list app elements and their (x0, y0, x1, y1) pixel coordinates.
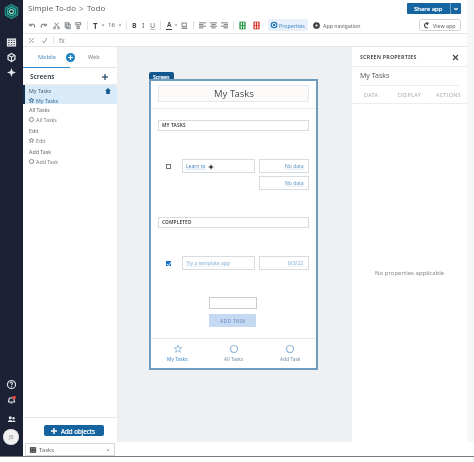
button[interactable]: All Tasks (23, 104, 117, 125)
button[interactable]: Cut (51, 19, 62, 32)
staticText: Add Task (280, 356, 301, 363)
staticText: DISPLAY (398, 91, 422, 98)
staticText: Simple To-do (28, 3, 76, 14)
button[interactable]: Screen (149, 72, 174, 81)
button[interactable]: Automation (4, 65, 19, 80)
button[interactable]: Align right (219, 19, 230, 32)
button[interactable]: Add objects (44, 425, 104, 436)
button[interactable]: Web (70, 47, 117, 67)
staticText: Properties (279, 22, 305, 29)
staticText: ACTIONS (436, 91, 461, 98)
button[interactable]: Mobile (23, 47, 70, 67)
staticText: No data (285, 180, 304, 187)
button[interactable]: Apps (4, 50, 19, 65)
button[interactable]: No data (259, 176, 309, 190)
button[interactable]: Task completed (166, 261, 171, 266)
button[interactable]: Confirm (40, 36, 49, 45)
button[interactable]: My Tasks (158, 85, 309, 102)
button[interactable]: AppSheet home (2, 2, 20, 20)
button[interactable]: Add Task (23, 146, 117, 167)
button[interactable]: Share app (407, 3, 450, 14)
staticText: My Tasks (360, 71, 390, 81)
button[interactable]: Font (91, 17, 100, 33)
button[interactable]: Learn to (182, 159, 255, 173)
staticText: Add Task (36, 158, 59, 165)
staticText: ADD TASK (220, 317, 246, 324)
button[interactable]: Format painter (73, 19, 84, 32)
button[interactable]: Expand (173, 20, 179, 30)
staticText: Share app (414, 5, 443, 13)
button[interactable]: Align left (197, 19, 208, 32)
button[interactable]: Try a template app (182, 256, 255, 270)
staticText: Edit (29, 127, 39, 134)
button[interactable]: No data (259, 159, 309, 173)
button[interactable]: Help (4, 377, 19, 392)
button[interactable]: Merge cells (251, 19, 262, 32)
staticText: Todo (87, 3, 106, 14)
staticText: Tasks (39, 446, 55, 454)
button[interactable]: 6/3/22 (259, 256, 309, 270)
staticText: U (150, 21, 156, 31)
button[interactable]: My Tasks (149, 339, 206, 369)
staticText: > (79, 3, 84, 14)
button[interactable]: B (130, 19, 139, 32)
button[interactable]: U (148, 19, 157, 32)
staticText: A (167, 20, 172, 29)
button[interactable]: Cancel (27, 36, 36, 45)
button[interactable]: Text color (164, 17, 173, 33)
button[interactable]: Edit (23, 125, 117, 146)
staticText: I (142, 21, 145, 31)
button[interactable]: DISPLAY (391, 86, 429, 103)
button[interactable]: ACTIONS (429, 86, 467, 103)
staticText: Edit (36, 137, 46, 144)
button[interactable]: ADD TASK (209, 314, 256, 327)
button[interactable]: Undo (27, 19, 38, 32)
staticText: 16 (108, 21, 115, 29)
button[interactable]: Switch platform (66, 53, 75, 62)
staticText: All Tasks (36, 116, 57, 123)
staticText: Learn to (186, 163, 206, 170)
button[interactable] (209, 297, 257, 309)
button[interactable]: My Tasks (23, 85, 117, 104)
button[interactable]: Font size (106, 17, 117, 33)
button[interactable]: Copy (62, 19, 73, 32)
button[interactable]: Account (3, 429, 19, 445)
button[interactable]: Expand (117, 20, 123, 30)
staticText: Screens (30, 72, 55, 81)
staticText: JB (9, 434, 14, 441)
staticText: SCREEN PROPERTIES (360, 53, 417, 60)
button[interactable]: Fill color (179, 19, 190, 32)
button[interactable]: Align center (208, 19, 219, 32)
staticText: App navigation (323, 22, 361, 29)
staticText: All Tasks (224, 356, 244, 363)
button[interactable]: Redo (38, 19, 49, 32)
button[interactable]: Add Task (262, 339, 318, 369)
button[interactable]: MY TASKS (158, 120, 309, 131)
button[interactable]: Add screen (98, 70, 111, 83)
button[interactable]: App navigation (313, 19, 361, 31)
button[interactable]: Expand (100, 20, 106, 30)
button[interactable]: Toggle task (166, 164, 171, 169)
button[interactable]: I (139, 19, 148, 32)
staticText: My Tasks (214, 87, 254, 100)
button[interactable]: Borders (237, 19, 248, 32)
button[interactable]: Close panel (449, 51, 461, 63)
button[interactable]: Tasks (25, 443, 115, 456)
staticText: fx (59, 36, 65, 45)
button[interactable]: View app (419, 19, 461, 31)
button[interactable]: DATA (352, 86, 391, 103)
staticText: My Tasks (29, 87, 52, 94)
button[interactable]: All Tasks (206, 339, 262, 369)
button[interactable]: COMPLETED (158, 217, 309, 228)
button[interactable]: Share options (451, 3, 461, 14)
button[interactable]: Notifications (4, 393, 19, 408)
staticText: No properties applicable (375, 269, 445, 277)
button[interactable]: Properties (268, 19, 308, 31)
staticText: MY TASKS (162, 122, 186, 129)
button[interactable]: Team (4, 412, 19, 427)
staticText: B (132, 21, 137, 31)
staticText: COMPLETED (162, 219, 192, 226)
staticText: My Tasks (36, 97, 59, 104)
staticText: Add objects (61, 427, 95, 435)
button[interactable]: Data (4, 35, 19, 50)
